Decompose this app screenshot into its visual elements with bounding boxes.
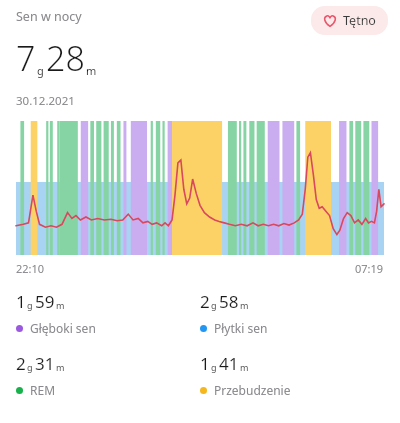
staticText: Płytki sen xyxy=(214,320,268,336)
staticText: g xyxy=(211,361,217,373)
staticText: g xyxy=(27,361,33,373)
staticText: 22:10 xyxy=(16,261,45,276)
staticText: g xyxy=(37,63,44,78)
staticText: m xyxy=(240,361,249,373)
staticText: 41 xyxy=(219,352,239,375)
staticText: m xyxy=(56,361,65,373)
staticText: Przebudzenie xyxy=(214,382,291,398)
staticText: g xyxy=(211,299,217,311)
staticText: 30.12.2021 xyxy=(16,93,75,109)
staticText: Tętno xyxy=(343,12,376,29)
staticText: m xyxy=(86,63,97,78)
staticText: m xyxy=(56,299,65,311)
button[interactable]: Tętno xyxy=(311,6,388,35)
staticText: 59 xyxy=(35,290,55,313)
staticText: 2 xyxy=(16,352,26,375)
staticText: 07:19 xyxy=(355,261,384,276)
staticText: 2 xyxy=(200,290,210,313)
staticText: 1 xyxy=(200,352,210,375)
button[interactable]: 2 xyxy=(200,290,384,336)
staticText: m xyxy=(240,299,249,311)
staticText: Sen w nocy xyxy=(16,8,82,25)
staticText: g xyxy=(27,299,33,311)
button[interactable]: 1 xyxy=(16,290,200,336)
staticText: 31 xyxy=(35,352,55,375)
staticText: 28 xyxy=(46,35,85,81)
staticText: 1 xyxy=(16,290,26,313)
staticText: 58 xyxy=(219,290,239,313)
button[interactable]: 2 xyxy=(16,352,200,398)
staticText: Głęboki sen xyxy=(30,320,96,336)
button[interactable]: 1 xyxy=(200,352,384,398)
staticText: REM xyxy=(30,382,56,398)
staticText: 7 xyxy=(16,35,36,81)
